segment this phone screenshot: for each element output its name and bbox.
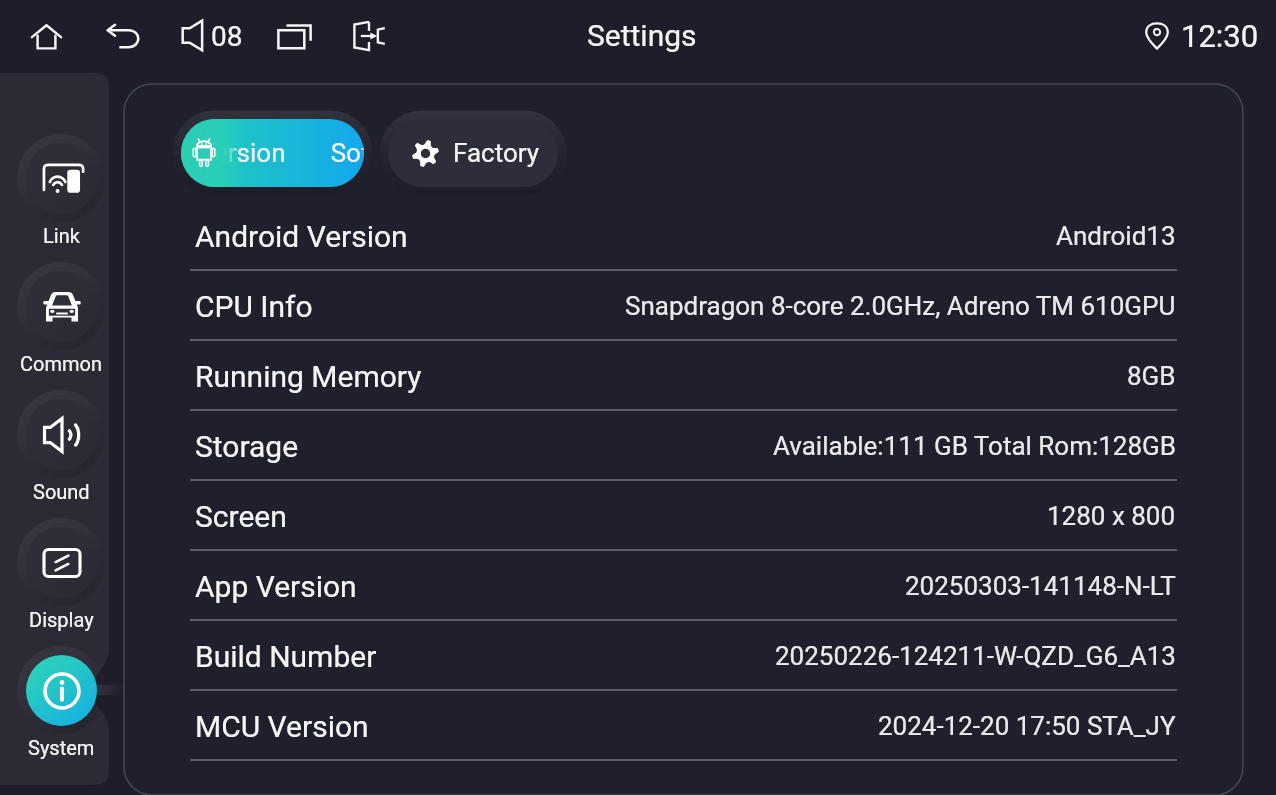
staticText: Storage <box>195 429 299 464</box>
button[interactable] <box>17 518 105 606</box>
staticText: Link <box>43 224 80 247</box>
button[interactable] <box>17 262 105 350</box>
button[interactable]: Screen <box>190 481 1177 551</box>
staticText: CPU Info <box>195 289 313 324</box>
staticText: 1280 x 800 <box>1047 501 1176 531</box>
button[interactable]: Factory <box>388 119 558 187</box>
button[interactable]: Version Software <box>181 119 364 187</box>
staticText: Sound <box>33 480 90 503</box>
staticText: 8GB <box>1127 361 1176 391</box>
staticText: Snapdragon 8-core 2.0GHz, Adreno TM 610G… <box>625 291 1176 321</box>
button[interactable]: Build Number <box>190 621 1177 691</box>
button[interactable] <box>17 646 105 734</box>
button[interactable] <box>17 134 105 222</box>
button[interactable]: 08 <box>174 8 246 64</box>
staticText: Screen <box>195 499 287 534</box>
button[interactable]: MCU Version <box>190 691 1177 761</box>
staticText: MCU Version <box>195 709 369 744</box>
button[interactable]: Recent apps <box>268 10 320 62</box>
button[interactable]: Running Memory <box>190 341 1177 411</box>
staticText: 2024-12-20 17:50 STA_JY <box>878 711 1176 741</box>
button[interactable]: CPU Info <box>190 271 1177 341</box>
staticText: 12:30 <box>1181 18 1259 54</box>
staticText: Available:111 GB Total Rom:128GB <box>773 431 1176 461</box>
button[interactable]: Back <box>98 10 150 62</box>
staticText: 20250226-124211-W-QZD_G6_A13 <box>775 641 1176 671</box>
button[interactable] <box>17 390 105 478</box>
staticText: Running Memory <box>195 359 422 394</box>
staticText: Common <box>20 352 102 375</box>
staticText: Factory <box>453 138 540 168</box>
button[interactable]: Android Version <box>190 201 1177 271</box>
staticText: Settings <box>587 18 697 53</box>
button[interactable]: Storage <box>190 411 1177 481</box>
staticText: App Version <box>195 569 357 604</box>
staticText: Display <box>29 608 94 631</box>
staticText: Android13 <box>1056 221 1176 251</box>
button[interactable]: App Version <box>190 551 1177 621</box>
staticText: 20250303-141148-N-LT <box>905 571 1176 601</box>
staticText: System <box>28 736 95 759</box>
button[interactable]: 12:30 <box>1142 18 1259 54</box>
staticText: Android Version <box>195 219 408 254</box>
staticText: Build Number <box>195 639 377 674</box>
staticText: Version Software <box>198 138 364 168</box>
staticText: 08 <box>211 20 243 53</box>
button[interactable]: Home <box>20 10 72 62</box>
button[interactable]: Exit <box>343 10 395 62</box>
